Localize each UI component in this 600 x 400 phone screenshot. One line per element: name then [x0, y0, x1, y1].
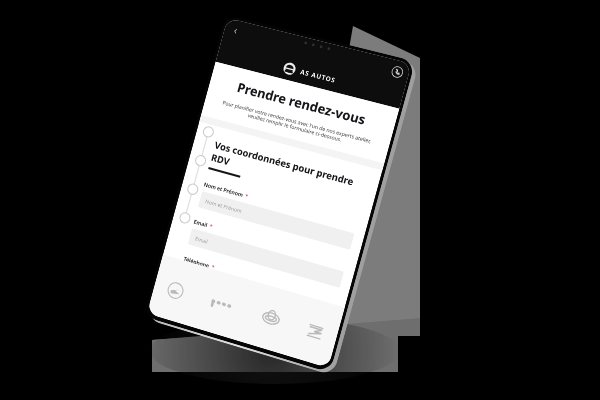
staticText: Téléphone: [183, 255, 211, 268]
staticText: Nom et Prénom: [205, 197, 243, 214]
button[interactable]: Email: [188, 228, 344, 288]
staticText: Email: [194, 234, 209, 245]
button[interactable]: Jeep: [209, 296, 236, 313]
staticText: Pour planifier votre rendez-vous avec l'…: [216, 97, 376, 152]
button[interactable]: Opel: [165, 280, 185, 301]
staticText: AS AUTOS: [299, 67, 337, 85]
staticText: Prendre rendez-vous: [235, 78, 368, 129]
button[interactable]: Call: [390, 65, 404, 79]
staticText: Vos coordonnées pour prendre RDV: [210, 138, 369, 205]
staticText: *: [209, 222, 213, 230]
button[interactable]: Suzuki: [305, 321, 325, 342]
button[interactable]: Nom et Prénom: [198, 191, 355, 250]
staticText: *: [211, 263, 215, 269]
button[interactable]: Toyota: [260, 307, 282, 330]
staticText: Nom et Prénom: [203, 180, 244, 198]
button[interactable]: ‹: [232, 22, 240, 37]
staticText: *: [244, 192, 249, 199]
staticText: Email: [193, 218, 209, 228]
